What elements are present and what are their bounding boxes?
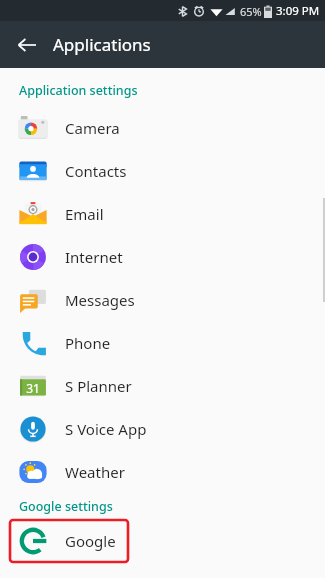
staticText: Messages [65,290,135,310]
staticText: Camera [65,118,120,138]
button[interactable]: Google [0,519,325,563]
staticText: Internet [65,247,123,267]
staticText: 3:09 PM [276,3,320,19]
staticText: Google settings [19,498,113,515]
staticText: S Planner [65,376,132,396]
button[interactable]: 31 [0,364,325,407]
button[interactable]: Internet [0,235,325,278]
button[interactable]: Email [0,192,325,235]
button[interactable]: Contacts [0,149,325,192]
staticText: Contacts [65,161,127,181]
button[interactable]: Back [10,28,44,62]
button[interactable]: S Voice App [0,407,325,450]
staticText: Phone [65,333,111,353]
button[interactable]: Camera [0,106,325,149]
staticText: 65% [240,4,262,19]
button[interactable]: Weather [0,450,325,493]
staticText: Weather [65,462,125,482]
staticText: 31 [26,380,40,396]
button[interactable]: Phone [0,321,325,364]
staticText: Application settings [19,82,138,99]
button[interactable]: Messages [0,278,325,321]
staticText: Google [65,531,116,551]
staticText: S Voice App [65,419,147,439]
staticText: Applications [53,33,151,56]
staticText: Email [65,204,104,224]
